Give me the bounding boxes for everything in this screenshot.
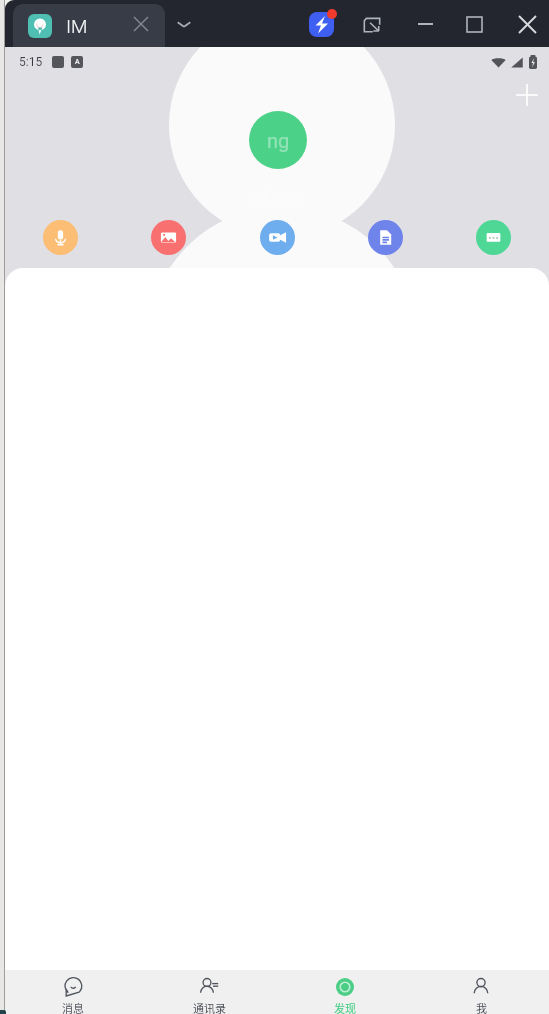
button[interactable]: Resize window: [350, 2, 394, 46]
staticText: 消息: [62, 1000, 84, 1014]
button[interactable]: Close window: [505, 2, 549, 46]
staticText: ng: [267, 129, 290, 152]
button[interactable]: Add: [508, 76, 546, 114]
button[interactable]: Video call: [260, 220, 295, 255]
staticText: 我: [476, 1000, 487, 1014]
button[interactable]: File: [368, 220, 403, 255]
staticText: IM: [66, 15, 88, 37]
staticText: 发现: [334, 1000, 356, 1014]
button[interactable]: Show tab list: [166, 6, 202, 42]
staticText: 通讯录: [193, 1000, 226, 1014]
button[interactable]: Assistant: [299, 2, 343, 46]
button[interactable]: 消息: [5, 970, 141, 1014]
staticText: 5:15: [19, 55, 43, 69]
button[interactable]: Close tab: [123, 6, 159, 42]
staticText: A: [75, 58, 80, 66]
button[interactable]: Minimize: [403, 2, 447, 46]
button[interactable]: 我: [413, 970, 549, 1014]
button[interactable]: Photo: [151, 220, 186, 255]
button[interactable]: IM: [13, 4, 165, 47]
button[interactable]: akung avatar: [249, 111, 307, 169]
button[interactable]: 发现: [277, 970, 413, 1014]
button[interactable]: Maximize: [452, 2, 496, 46]
button[interactable]: [5, 268, 549, 1014]
button[interactable]: More: [476, 220, 511, 255]
button[interactable]: 通讯录: [141, 970, 277, 1014]
button[interactable]: Voice message: [43, 220, 78, 255]
